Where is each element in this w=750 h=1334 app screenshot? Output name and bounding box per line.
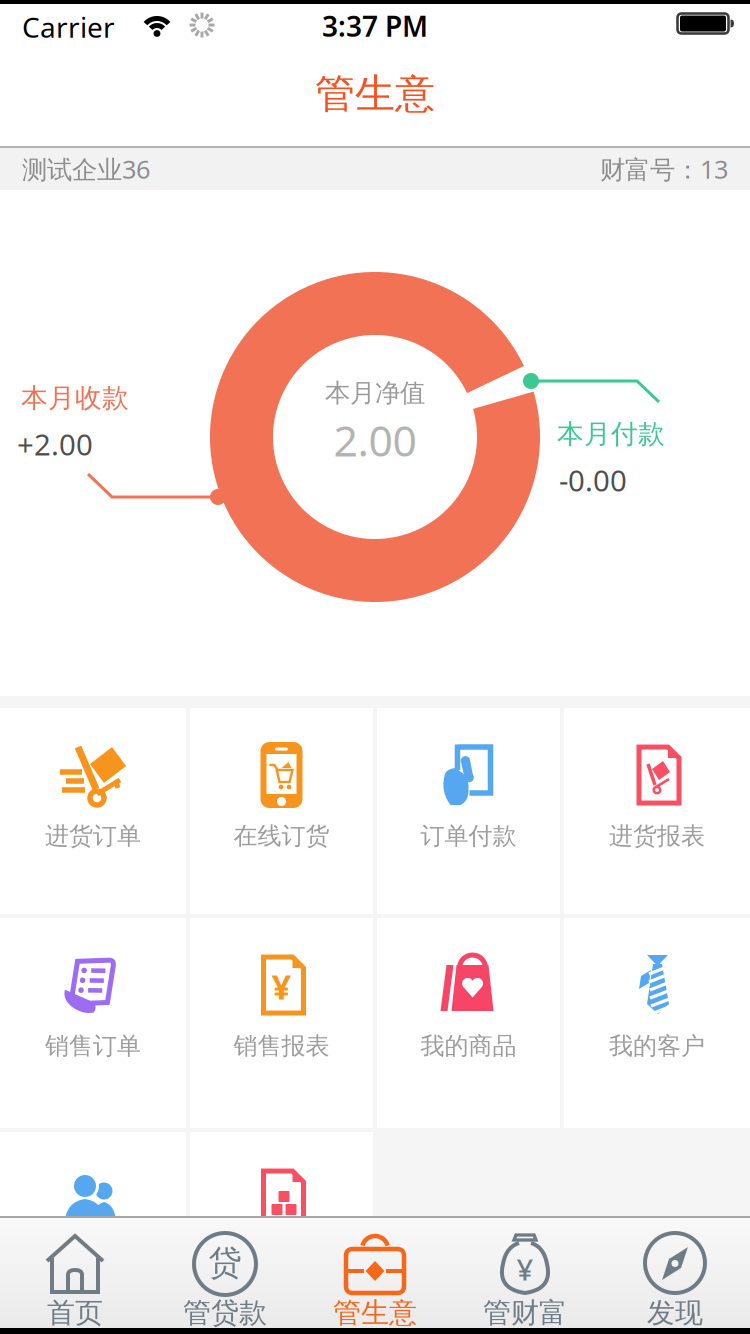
staticText: 管生意 bbox=[333, 1296, 417, 1330]
staticText: 首页 bbox=[47, 1296, 103, 1330]
staticText: 贷 bbox=[208, 1242, 241, 1283]
staticText: 库存报表 bbox=[233, 1245, 329, 1275]
staticText: 3:37 PM bbox=[322, 7, 428, 45]
button[interactable]: 我的员工 bbox=[0, 1132, 186, 1334]
button[interactable]: 在线订货 bbox=[190, 708, 373, 914]
staticText: ¥ bbox=[271, 963, 291, 1009]
button[interactable]: 销售订单 bbox=[0, 918, 186, 1128]
staticText: 销售订单 bbox=[45, 1031, 141, 1061]
staticText: 我的商品 bbox=[420, 1031, 516, 1061]
staticText: 在线订货 bbox=[233, 821, 329, 851]
button[interactable]: 我的客户 bbox=[564, 918, 750, 1128]
button[interactable]: 进货报表 bbox=[564, 708, 750, 914]
button[interactable]: 管生意 bbox=[300, 1218, 450, 1330]
staticText: -0.00 bbox=[559, 460, 627, 499]
button[interactable]: 发现 bbox=[600, 1218, 750, 1330]
staticText: 管贷款 bbox=[183, 1296, 267, 1330]
staticText: 2.00 bbox=[333, 412, 416, 468]
button[interactable]: 首页 bbox=[0, 1218, 150, 1330]
staticText: 销售报表 bbox=[233, 1031, 329, 1061]
staticText: 财富号：13 bbox=[600, 152, 728, 186]
button[interactable]: 库存报表 bbox=[190, 1132, 373, 1334]
staticText: 进货报表 bbox=[609, 821, 705, 851]
staticText: 测试企业36 bbox=[22, 152, 150, 186]
button[interactable]: 贷 bbox=[150, 1218, 300, 1330]
staticText: 发现 bbox=[647, 1296, 703, 1330]
staticText: 本月收款 bbox=[21, 382, 129, 414]
staticText: 我的员工 bbox=[45, 1245, 141, 1275]
staticText: 本月净值 bbox=[325, 377, 425, 408]
button[interactable]: ¥ bbox=[190, 918, 373, 1128]
staticText: 管生意 bbox=[315, 69, 435, 118]
staticText: Carrier bbox=[22, 8, 115, 46]
staticText: ¥ bbox=[516, 1249, 533, 1288]
staticText: 订单付款 bbox=[420, 821, 516, 851]
staticText: +2.00 bbox=[17, 424, 93, 463]
button[interactable]: 订单付款 bbox=[377, 708, 560, 914]
staticText: 进货订单 bbox=[45, 821, 141, 851]
button[interactable]: 进货订单 bbox=[0, 708, 186, 914]
staticText: 本月付款 bbox=[557, 418, 665, 450]
button[interactable]: ¥ bbox=[450, 1218, 600, 1330]
button[interactable]: 我的商品 bbox=[377, 918, 560, 1128]
staticText: 我的客户 bbox=[609, 1031, 705, 1061]
staticText: 管财富 bbox=[483, 1296, 567, 1330]
